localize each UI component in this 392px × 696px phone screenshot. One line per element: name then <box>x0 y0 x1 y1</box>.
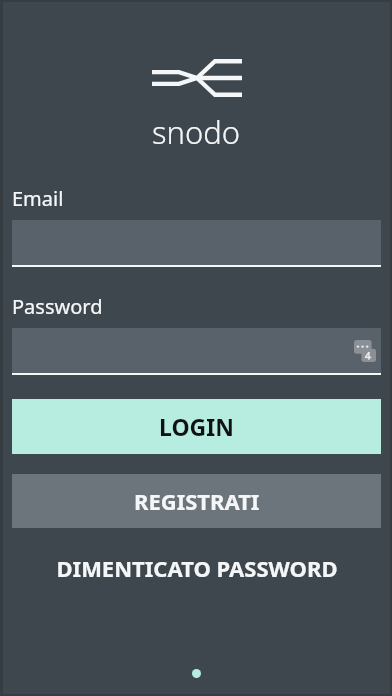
button[interactable] <box>12 220 381 267</box>
staticText: LOGIN <box>159 411 234 442</box>
staticText: Email <box>12 185 64 212</box>
other: snodo logo <box>152 57 242 99</box>
staticText: snodo <box>152 111 241 153</box>
button[interactable]: LOGIN <box>12 399 381 454</box>
other: Saved passwords <box>354 340 376 362</box>
button[interactable]: Saved passwords <box>12 328 381 375</box>
staticText: DIMENTICATO PASSWORD <box>56 553 338 583</box>
button[interactable]: REGISTRATI <box>12 474 381 528</box>
staticText: Password <box>12 293 103 320</box>
staticText: REGISTRATI <box>134 486 260 516</box>
button[interactable]: DIMENTICATO PASSWORD <box>12 546 381 590</box>
